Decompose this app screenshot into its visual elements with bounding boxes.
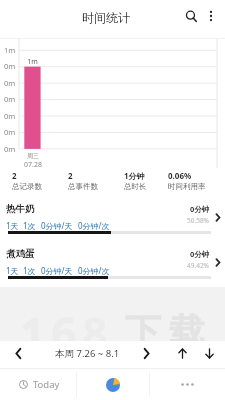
staticText: 0分钟/次 <box>78 220 110 231</box>
button[interactable]: 1分钟 <box>124 170 147 191</box>
staticText: 0分钟/天 <box>41 265 73 276</box>
staticText: 1天 <box>6 220 19 231</box>
staticText: Today <box>33 378 60 391</box>
staticText: 本周 7.26 ~ 8.1 <box>55 347 120 360</box>
staticText: 2 <box>12 170 17 181</box>
staticText: 热牛奶 <box>6 203 35 215</box>
button[interactable]: Open details <box>209 209 225 225</box>
staticText: 时间利用率 <box>168 182 206 191</box>
button[interactable]: Sort descending <box>200 344 218 362</box>
staticText: 2 <box>68 170 73 181</box>
staticText: 总事件数 <box>68 182 98 191</box>
button[interactable]: 0.06% <box>168 170 206 191</box>
staticText: 0分钟/天 <box>41 220 73 231</box>
staticText: 1m <box>4 45 16 55</box>
button[interactable]: Today <box>0 369 76 400</box>
staticText: GPS.it168.com <box>134 361 189 372</box>
staticText: 50.58% <box>187 216 210 225</box>
button[interactable]: More <box>150 369 225 400</box>
staticText: 0分钟 <box>190 249 210 259</box>
staticText: 1分钟 <box>124 170 145 181</box>
staticText: 0m <box>4 61 16 71</box>
button[interactable]: More options <box>201 6 221 26</box>
button[interactable]: Sort ascending <box>173 344 191 362</box>
staticText: 0m <box>4 111 16 121</box>
staticText: 1天 <box>6 265 19 276</box>
button[interactable]: Open details <box>209 254 225 270</box>
staticText: 1次 <box>23 265 36 276</box>
staticText: 49.42% <box>187 261 210 270</box>
staticText: 1次 <box>23 220 36 231</box>
button[interactable]: Search <box>181 6 202 27</box>
staticText: 周三 <box>27 152 39 160</box>
staticText: 0m <box>4 144 16 154</box>
staticText: 下载 <box>121 309 209 341</box>
button[interactable]: 2 <box>68 170 98 191</box>
staticText: 时间统计 <box>82 10 130 25</box>
staticText: 0m <box>4 78 16 88</box>
staticText: 0.06% <box>168 170 192 181</box>
button[interactable]: 煮鸡蛋 <box>0 245 225 285</box>
button[interactable]: 2 <box>12 170 42 191</box>
staticText: 1m <box>27 57 38 67</box>
staticText: 0分钟/次 <box>78 265 110 276</box>
staticText: 0分钟 <box>190 204 210 214</box>
staticText: 总记录数 <box>12 182 42 191</box>
staticText: 总时长 <box>124 182 147 191</box>
button[interactable]: Statistics <box>77 369 149 400</box>
button[interactable]: Previous week <box>9 344 27 362</box>
staticText: 煮鸡蛋 <box>6 248 35 260</box>
staticText: 0m <box>4 127 16 137</box>
staticText: 07.28 <box>24 160 42 170</box>
button[interactable]: Next week <box>137 344 155 362</box>
staticText: 0m <box>4 94 16 104</box>
button[interactable]: 热牛奶 <box>0 200 225 240</box>
